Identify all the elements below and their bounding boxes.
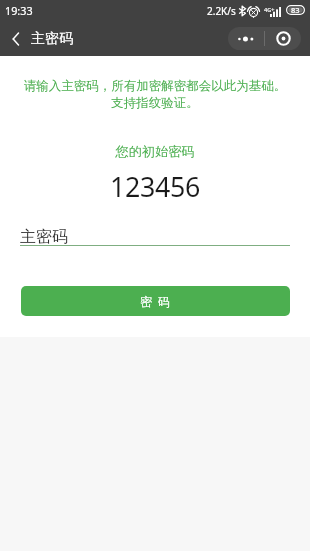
staticText: 83: [291, 5, 300, 15]
staticText: 2.2K/s: [207, 4, 236, 18]
staticText: 请输入主密码，所有加密解密都会以此为基础。 支持指纹验证。: [0, 78, 310, 111]
button[interactable]: Back: [4, 27, 28, 51]
staticText: 主密码: [31, 30, 73, 48]
button[interactable]: 密 码: [21, 286, 290, 316]
staticText: 4G+: [264, 6, 275, 13]
staticText: 密 码: [140, 293, 172, 309]
staticText: 主密码: [20, 227, 68, 247]
staticText: 您的初始密码: [0, 143, 310, 160]
button[interactable]: More options: [228, 27, 264, 50]
button[interactable]: Close: [265, 27, 301, 50]
staticText: 19:33: [5, 3, 33, 18]
staticText: 123456: [0, 168, 310, 205]
